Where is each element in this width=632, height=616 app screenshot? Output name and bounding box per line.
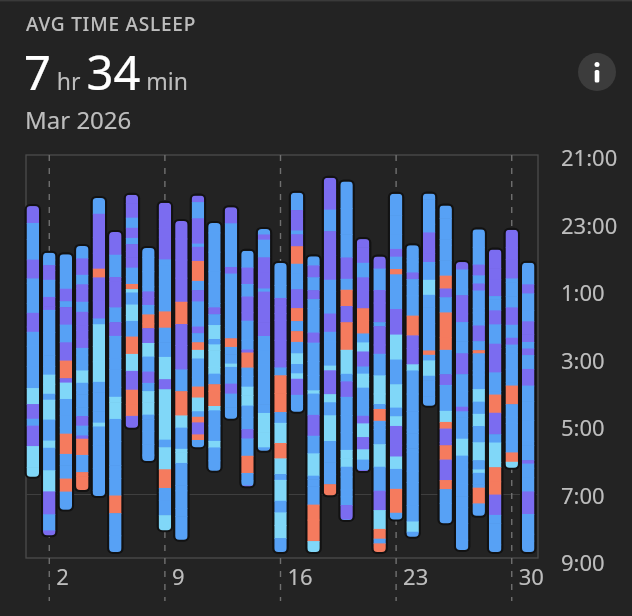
button[interactable]: Info <box>578 53 616 91</box>
